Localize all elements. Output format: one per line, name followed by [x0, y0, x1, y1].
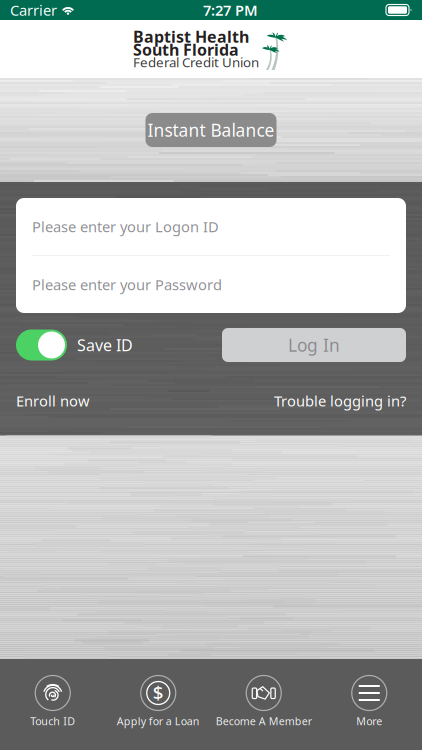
staticText: Touch ID — [30, 714, 75, 728]
staticText: Instant Balance — [147, 118, 274, 141]
button[interactable]: More — [316, 659, 422, 749]
staticText: Federal Credit Union — [133, 53, 259, 71]
button[interactable]: Instant Balance — [145, 113, 276, 147]
staticText: Trouble logging in? — [274, 391, 406, 410]
button[interactable]: Become A Member — [211, 659, 316, 749]
staticText: Save ID — [77, 334, 133, 356]
staticText: $ — [153, 680, 164, 705]
staticText: South Florida — [133, 39, 239, 60]
staticText: More — [356, 714, 382, 728]
staticText: Log In — [288, 333, 340, 356]
button[interactable]: Touch ID — [0, 659, 105, 749]
staticText: Become A Member — [216, 714, 312, 728]
button[interactable]: Enroll now — [16, 391, 90, 410]
staticText: Apply for a Loan — [117, 714, 200, 728]
staticText: Please enter your Password — [32, 275, 222, 294]
staticText: Carrier — [10, 0, 57, 20]
staticText: Baptist Health — [133, 26, 249, 47]
button[interactable]: Trouble logging in? — [274, 391, 406, 410]
staticText: 7:27 PM — [203, 0, 258, 20]
staticText: Enroll now — [16, 391, 90, 410]
button[interactable]: Log In — [222, 328, 406, 362]
button[interactable]: Save ID — [16, 329, 133, 360]
staticText: Please enter your Logon ID — [32, 217, 219, 236]
button[interactable]: $ — [105, 659, 211, 749]
